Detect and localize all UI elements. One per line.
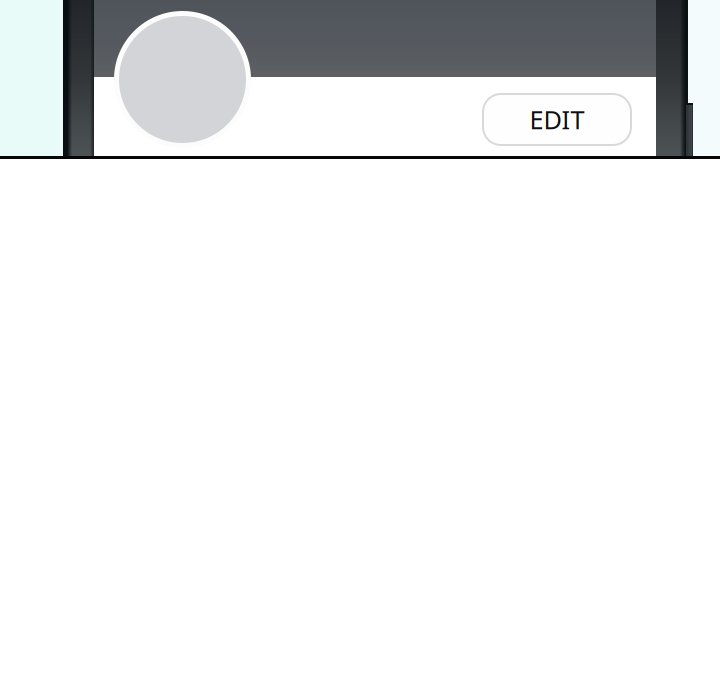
staticText: EDIT [529,103,584,136]
button[interactable]: Profile photo [114,11,251,148]
button[interactable]: EDIT [483,94,631,145]
